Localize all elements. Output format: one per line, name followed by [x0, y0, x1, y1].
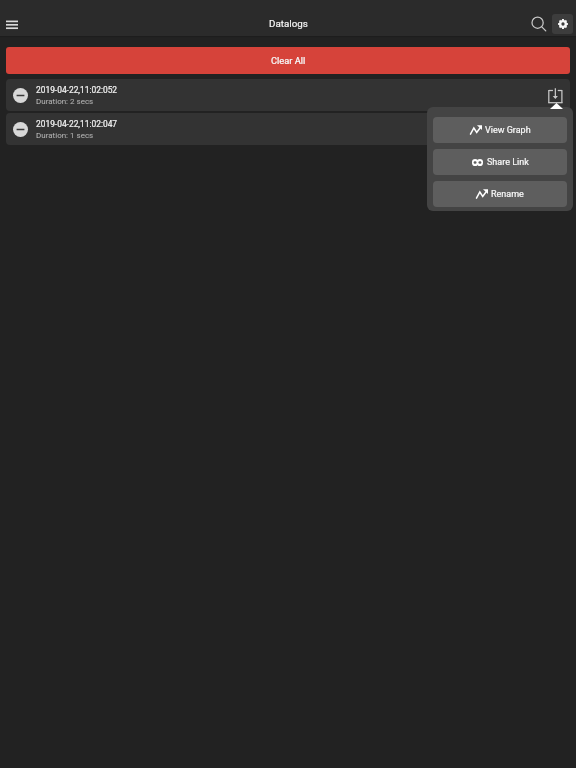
staticText: Datalogs: [269, 18, 308, 29]
button[interactable]: Menu: [0, 12, 24, 36]
staticText: 2019-04-22,11:02:047: [36, 119, 118, 129]
staticText: Clear All: [271, 55, 306, 66]
button[interactable]: View Graph: [433, 117, 567, 143]
staticText: Duration: 1 secs: [36, 131, 94, 140]
button[interactable]: 2019-04-22,11:02:052: [6, 79, 570, 111]
button[interactable]: Share Link: [433, 149, 567, 175]
button[interactable]: Rename: [433, 181, 567, 207]
button[interactable]: Search: [528, 12, 552, 36]
button[interactable]: Settings: [552, 14, 573, 34]
button[interactable]: Export: [545, 84, 567, 106]
button[interactable]: 2019-04-22,11:02:047: [6, 113, 570, 145]
staticText: Duration: 2 secs: [36, 97, 94, 106]
staticText: 2019-04-22,11:02:052: [36, 85, 118, 95]
staticText: Rename: [491, 189, 524, 200]
staticText: View Graph: [485, 125, 531, 136]
button[interactable]: Clear All: [6, 47, 570, 74]
staticText: Share Link: [487, 157, 529, 168]
